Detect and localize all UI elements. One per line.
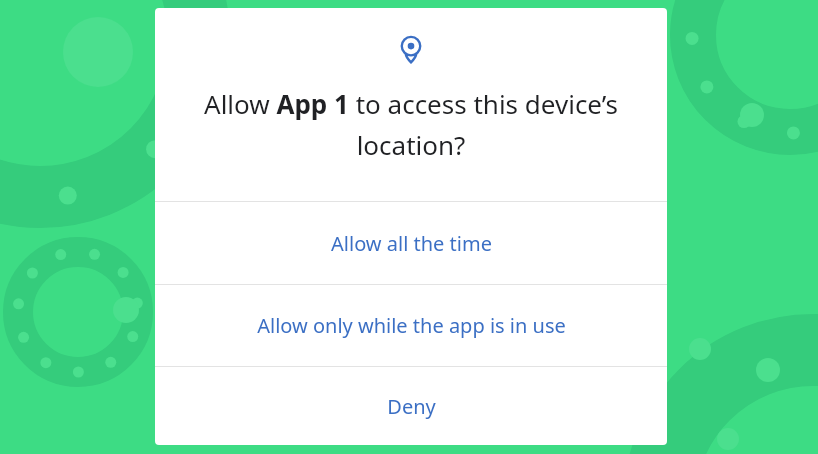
button[interactable]: Deny [155,367,667,445]
staticText: Allow only while the app is in use [257,312,566,339]
staticText: Allow App 1 to access this device’s loca… [185,86,637,163]
staticText: Allow all the time [331,230,492,257]
button[interactable]: Allow all the time [155,202,667,284]
button[interactable]: Allow only while the app is in use [155,285,667,366]
staticText: Deny [387,393,436,420]
other: Location [397,36,425,64]
